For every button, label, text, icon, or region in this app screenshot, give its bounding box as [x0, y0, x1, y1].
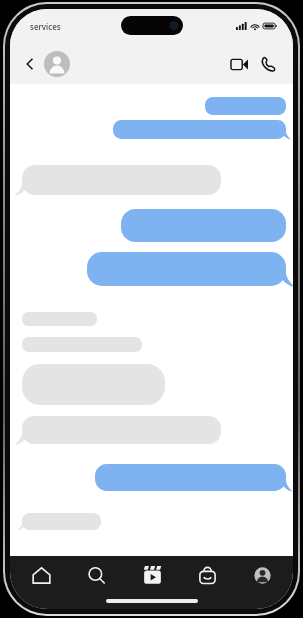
button[interactable]: Reels: [127, 556, 177, 594]
button[interactable]: Sent message: [121, 209, 286, 242]
button[interactable]: Profile: [237, 556, 287, 594]
button[interactable]: Received message: [22, 165, 221, 195]
button[interactable]: Received message: [22, 312, 97, 326]
button[interactable]: Received message: [22, 337, 142, 352]
button[interactable]: Sent message: [205, 97, 286, 115]
button[interactable]: Voice call: [255, 51, 281, 77]
button[interactable]: Sent message: [95, 464, 286, 491]
button[interactable]: Shop: [182, 556, 232, 594]
button[interactable]: Received message: [22, 513, 101, 530]
button[interactable]: Sent message: [87, 252, 286, 286]
button[interactable]: Back: [19, 53, 41, 75]
button[interactable]: Home: [16, 556, 66, 594]
button[interactable]: Video call: [226, 51, 252, 77]
staticText: services: [30, 21, 61, 32]
button[interactable]: Contact profile: [44, 51, 70, 77]
button[interactable]: Received message: [22, 364, 165, 405]
button[interactable]: Received message: [22, 416, 221, 444]
button[interactable]: Search: [71, 556, 121, 594]
button[interactable]: Sent message: [113, 120, 286, 139]
